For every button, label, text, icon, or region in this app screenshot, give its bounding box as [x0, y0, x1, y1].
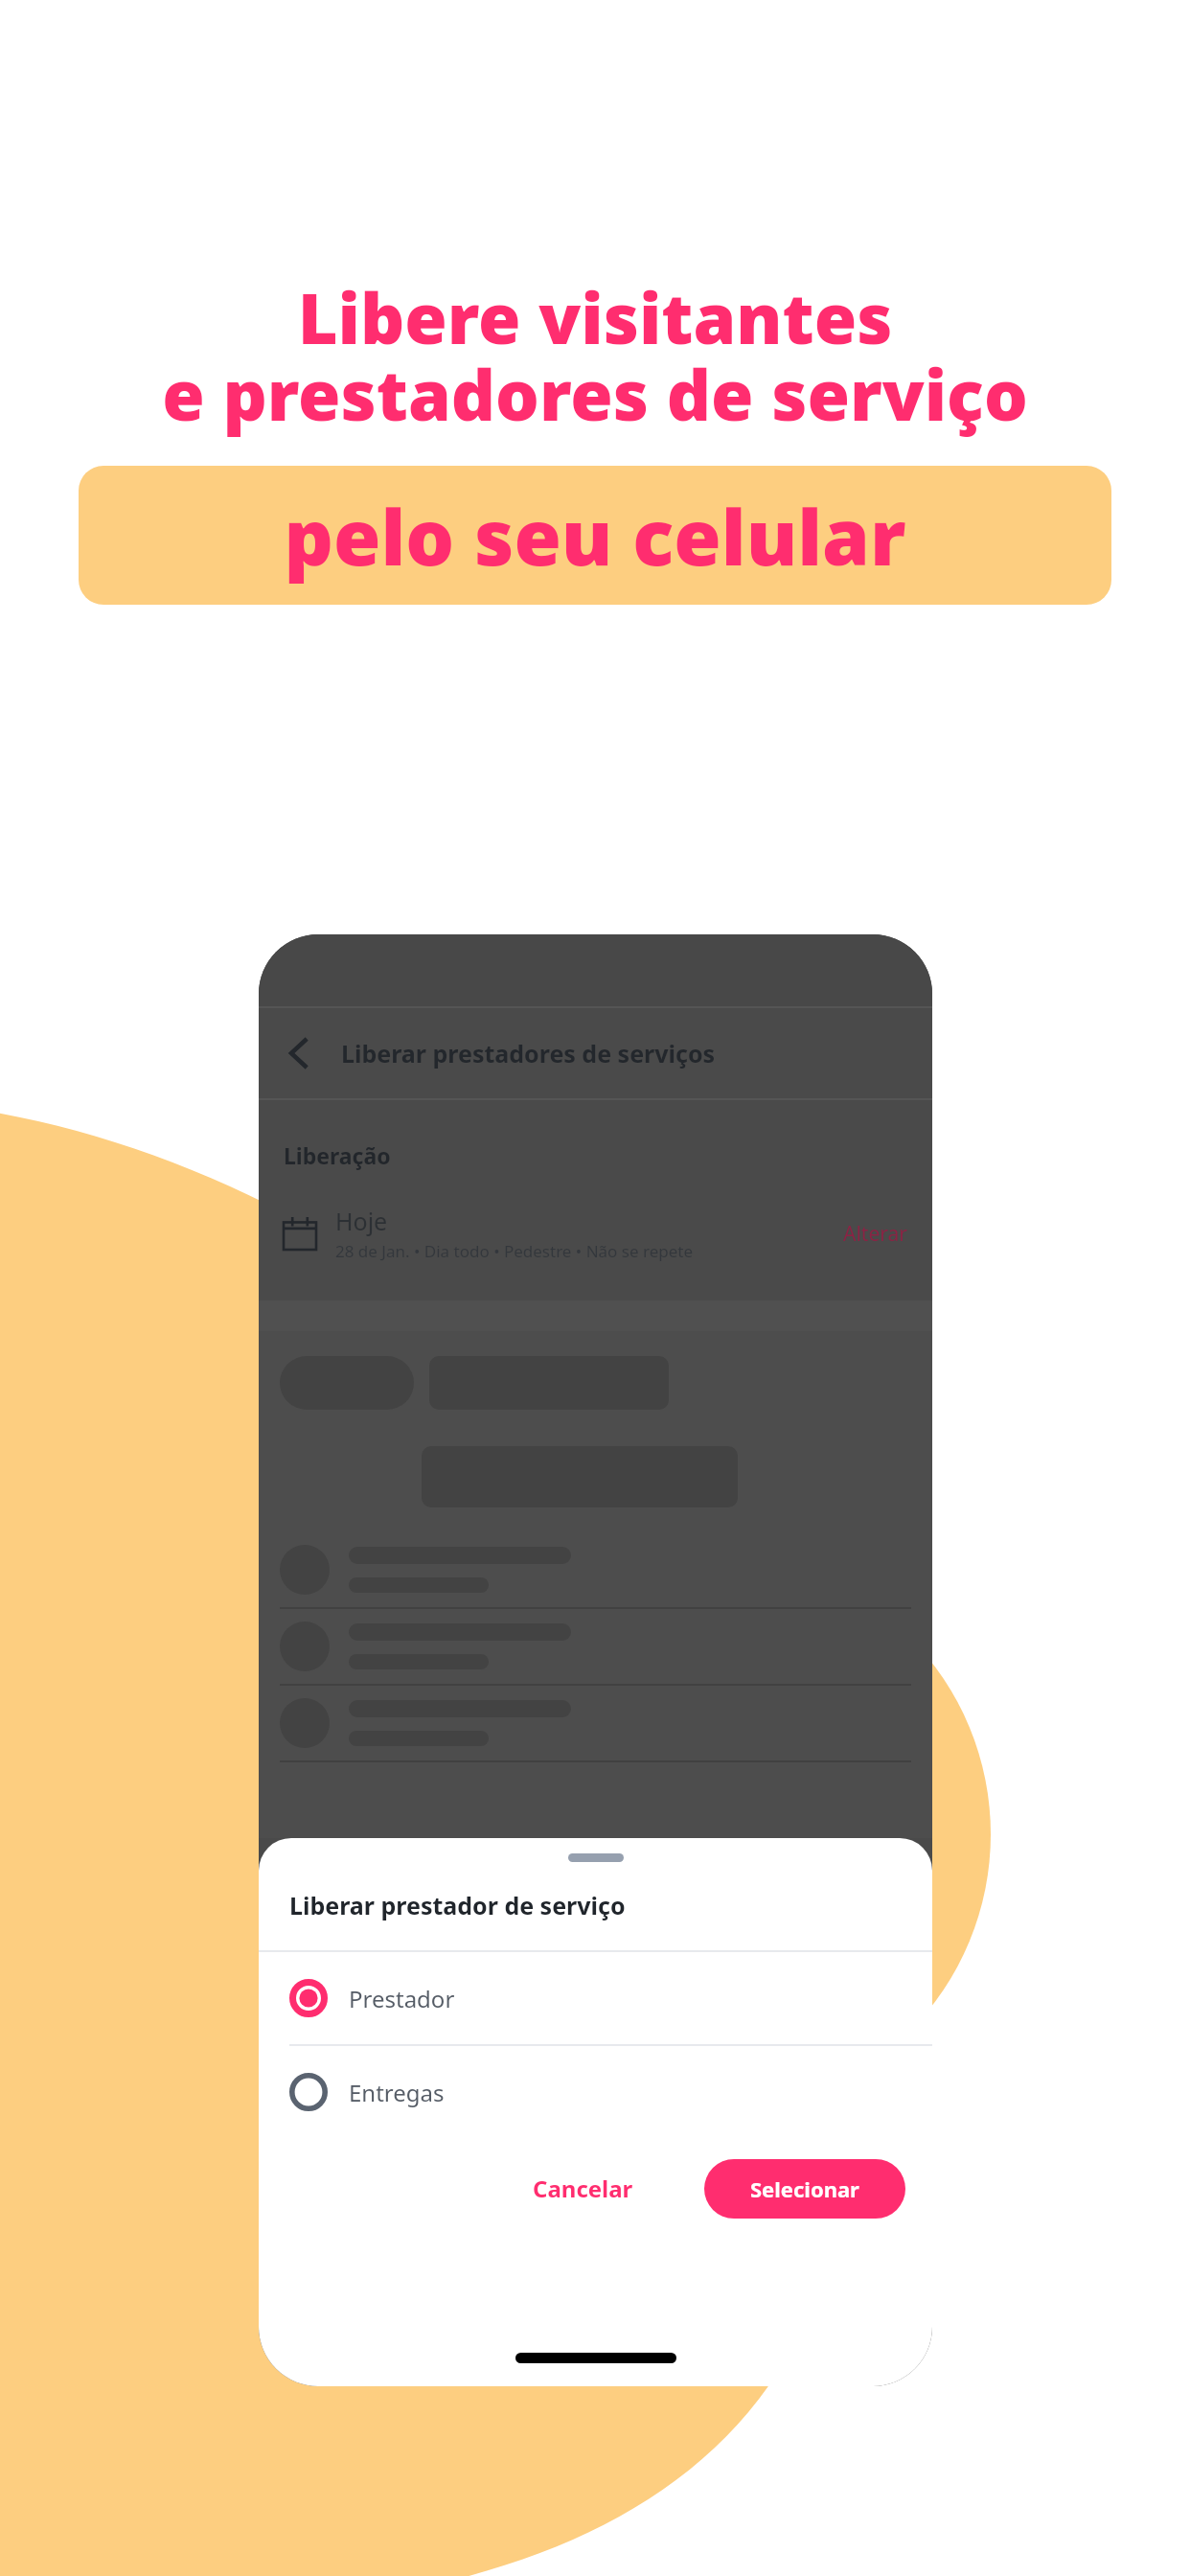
button[interactable]: Hoje — [259, 1205, 932, 1262]
staticText: Prestador — [349, 1983, 455, 2014]
staticText: Entregas — [349, 2077, 445, 2108]
staticText: Cancelar — [533, 2173, 633, 2204]
button[interactable]: Cancelar — [500, 2155, 666, 2221]
staticText: Selecionar — [750, 2174, 859, 2203]
button[interactable]: Voltar — [259, 1012, 341, 1094]
staticText: Alterar — [843, 1220, 907, 1248]
staticText: Liberação — [284, 1140, 391, 1170]
staticText: Hoje — [335, 1205, 388, 1237]
button[interactable]: Entregas — [259, 2046, 932, 2138]
staticText: Libere visitantes e prestadores de servi… — [0, 270, 1190, 441]
staticText: Liberar prestador de serviço — [289, 1889, 626, 1921]
staticText: Liberar prestadores de serviços — [341, 1037, 716, 1069]
staticText: 28 de Jan. • Dia todo • Pedestre • Não s… — [335, 1240, 693, 1262]
staticText: pelo seu celular — [107, 483, 1083, 587]
button[interactable]: Selecionar — [704, 2159, 905, 2219]
button[interactable]: Prestador — [259, 1952, 932, 2044]
